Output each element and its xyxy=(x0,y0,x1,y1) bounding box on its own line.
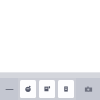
button[interactable]: Sticker xyxy=(39,80,55,98)
button[interactable]: Previous xyxy=(0,78,18,100)
button[interactable]: GIF xyxy=(58,80,74,98)
button[interactable]: Camera xyxy=(76,78,100,100)
button[interactable]: Emoji xyxy=(20,80,36,98)
